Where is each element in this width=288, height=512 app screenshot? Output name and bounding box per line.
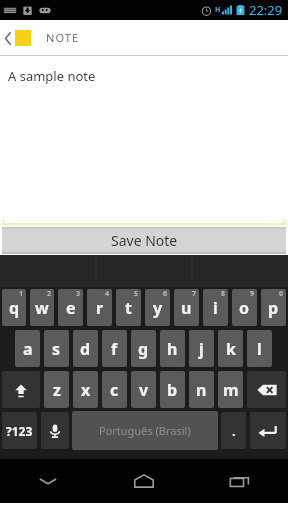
button[interactable]: Navigate up <box>0 30 35 46</box>
staticText: o <box>239 297 250 319</box>
staticText: r <box>96 297 104 319</box>
button[interactable]: e <box>58 289 83 326</box>
staticText: ?123 <box>6 423 33 439</box>
button[interactable]: Português (Brasil) <box>72 411 218 450</box>
staticText: w <box>35 297 49 319</box>
staticText: t <box>125 297 132 319</box>
staticText: f <box>111 338 118 360</box>
button[interactable]: r <box>87 289 112 326</box>
staticText: d <box>80 338 91 360</box>
button[interactable]: x <box>73 371 98 408</box>
staticText: v <box>139 379 149 401</box>
staticText: Save Note <box>111 231 178 250</box>
staticText: z <box>53 379 61 401</box>
staticText: 6 <box>163 289 168 299</box>
staticText: 5 <box>134 289 139 299</box>
button[interactable]: h <box>160 330 185 367</box>
staticText: a <box>23 338 33 360</box>
staticText: 7 <box>192 289 197 299</box>
button[interactable]: q <box>2 289 26 326</box>
staticText: y <box>153 297 163 319</box>
staticText: . <box>232 422 236 440</box>
staticText: 3 <box>76 289 81 299</box>
button[interactable]: . <box>221 412 246 449</box>
button[interactable]: Home <box>96 459 192 503</box>
button[interactable]: Enter <box>250 412 286 449</box>
button[interactable]: w <box>30 289 54 326</box>
button[interactable]: d <box>73 330 98 367</box>
staticText: m <box>223 379 239 401</box>
button[interactable]: i <box>203 289 228 326</box>
staticText: NOTE <box>46 30 80 45</box>
button[interactable]: Voice input <box>41 412 69 449</box>
staticText: h <box>167 338 178 360</box>
staticText: n <box>196 379 207 401</box>
button[interactable]: g <box>131 330 156 367</box>
staticText: A sample note <box>8 67 96 85</box>
button[interactable]: a <box>15 330 40 367</box>
staticText: 2 <box>47 289 52 299</box>
staticText: e <box>66 297 76 319</box>
button[interactable]: Backspace <box>247 371 286 408</box>
button[interactable]: y <box>145 289 170 326</box>
button[interactable]: m <box>218 371 243 408</box>
staticText: k <box>226 338 236 360</box>
button[interactable]: b <box>160 371 185 408</box>
button[interactable]: l <box>247 330 272 367</box>
button[interactable]: n <box>189 371 214 408</box>
button[interactable]: Recent apps <box>192 459 288 503</box>
button[interactable]: p <box>261 289 286 326</box>
button[interactable]: k <box>218 330 243 367</box>
button[interactable]: j <box>189 330 214 367</box>
button[interactable]: o <box>232 289 257 326</box>
staticText: j <box>199 338 204 360</box>
staticText: u <box>181 297 192 319</box>
button[interactable]: t <box>116 289 141 326</box>
staticText: c <box>110 379 119 401</box>
staticText: s <box>52 338 61 360</box>
staticText: 9 <box>250 289 255 299</box>
staticText: 0 <box>279 289 284 299</box>
staticText: 22:29 <box>249 1 283 19</box>
button[interactable]: Hide keyboard <box>0 459 96 503</box>
button[interactable]: ?123 <box>2 412 37 449</box>
staticText: 4 <box>105 289 110 299</box>
button[interactable]: f <box>102 330 127 367</box>
button[interactable]: s <box>44 330 69 367</box>
staticText: p <box>268 297 279 319</box>
staticText: l <box>257 338 262 360</box>
staticText: q <box>9 297 20 319</box>
button[interactable]: u <box>174 289 199 326</box>
staticText: H <box>215 5 221 15</box>
staticText: 1 <box>19 289 24 299</box>
staticText: g <box>138 338 149 360</box>
staticText: b <box>167 379 178 401</box>
staticText: x <box>81 379 91 401</box>
button[interactable]: Save Note <box>2 227 286 254</box>
button[interactable]: v <box>131 371 156 408</box>
button[interactable]: c <box>102 371 127 408</box>
staticText: 8 <box>221 289 226 299</box>
staticText: i <box>213 297 218 319</box>
staticText: Português (Brasil) <box>99 423 191 438</box>
button[interactable]: z <box>44 371 69 408</box>
button[interactable]: Shift <box>2 371 40 408</box>
